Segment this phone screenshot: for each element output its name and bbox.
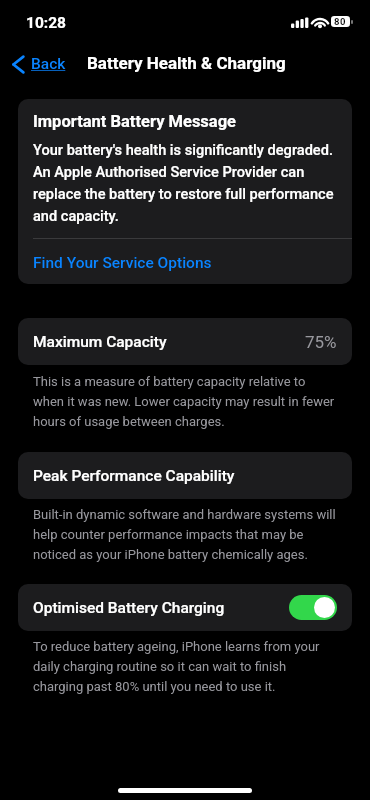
button[interactable]: Optimised Battery Charging xyxy=(289,595,337,620)
staticText: 75% xyxy=(305,332,337,352)
staticText: Built-in dynamic software and hardware s… xyxy=(33,503,345,563)
staticText: Peak Performance Capability xyxy=(33,467,235,485)
staticText: Maximum Capacity xyxy=(33,333,167,351)
staticText: Your battery's health is significantly d… xyxy=(33,137,340,225)
button[interactable]: Back xyxy=(0,51,74,77)
staticText: Battery Health & Charging xyxy=(87,53,286,73)
staticText: Optimised Battery Charging xyxy=(33,599,225,617)
staticText: This is a measure of battery capacity re… xyxy=(33,370,339,430)
button[interactable]: Find Your Service Options xyxy=(18,239,352,284)
staticText: Important Battery Message xyxy=(33,110,237,132)
staticText: To reduce battery ageing, iPhone learns … xyxy=(33,635,335,695)
staticText: Find Your Service Options xyxy=(33,252,212,272)
button[interactable]: Maximum Capacity xyxy=(18,318,352,365)
staticText: Back xyxy=(31,55,66,73)
staticText: 10:28 xyxy=(26,14,66,32)
staticText: 80 xyxy=(334,17,347,27)
button[interactable]: Peak Performance Capability xyxy=(18,452,352,499)
